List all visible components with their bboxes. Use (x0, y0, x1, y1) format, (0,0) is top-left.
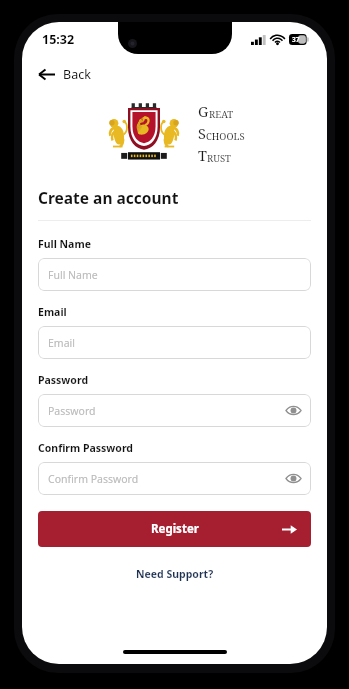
staticText: CHOOLS (206, 130, 245, 143)
staticText: Email (38, 305, 67, 319)
staticText: Register (151, 521, 199, 537)
staticText: G (198, 101, 209, 121)
button[interactable]: Back (30, 60, 103, 89)
staticText: T (198, 145, 207, 165)
staticText: Confirm Password (38, 441, 134, 455)
staticText: Full Name (48, 268, 98, 282)
other: Back (38, 66, 55, 83)
button[interactable]: Need Support? (128, 563, 222, 585)
staticText: 37 (292, 35, 300, 44)
button[interactable]: Confirm Password (38, 462, 311, 495)
staticText: Confirm Password (48, 472, 139, 486)
staticText: Password (38, 373, 89, 387)
staticText: REAT (209, 108, 234, 121)
staticText: RUST (207, 152, 231, 165)
button[interactable]: Password (38, 394, 311, 427)
button[interactable]: Show password (286, 405, 301, 416)
staticText: Create an account (38, 187, 179, 208)
staticText: Back (63, 66, 91, 83)
button[interactable]: Full Name (38, 258, 311, 291)
button[interactable]: Show password (286, 473, 301, 484)
staticText: Password (48, 404, 96, 418)
staticText: Email (48, 336, 75, 350)
button[interactable]: Register (38, 511, 311, 547)
staticText: S (198, 123, 206, 143)
button[interactable]: Email (38, 326, 311, 359)
staticText: 15:32 (42, 31, 75, 48)
staticText: Full Name (38, 237, 91, 251)
